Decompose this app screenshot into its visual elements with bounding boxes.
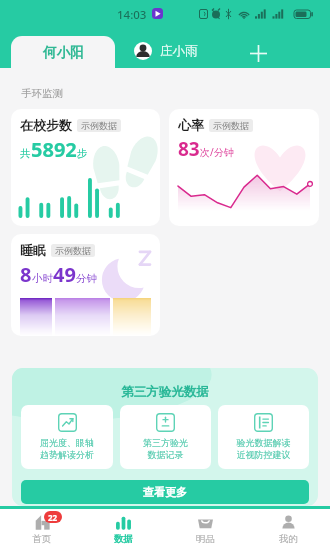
staticText: 22 bbox=[48, 512, 58, 523]
button[interactable]: 心率 bbox=[169, 109, 319, 226]
staticText: 数据 bbox=[114, 533, 133, 545]
staticText: 示例数据 bbox=[81, 120, 117, 131]
staticText: 次/分钟 bbox=[200, 145, 234, 159]
staticText: 83 bbox=[178, 136, 200, 162]
staticText: 8 bbox=[20, 261, 32, 288]
staticText: 分钟 bbox=[76, 272, 97, 285]
staticText: 睡眠 bbox=[20, 242, 46, 258]
button[interactable]: 我的 bbox=[247, 509, 330, 550]
staticText: 共 bbox=[20, 147, 31, 160]
staticText: 5892 bbox=[31, 136, 77, 163]
staticText: 庄小雨 bbox=[160, 43, 198, 59]
staticText: 查看更多 bbox=[143, 485, 187, 499]
button[interactable]: 查看更多 bbox=[21, 480, 309, 504]
button[interactable]: 屈光度、眼轴 趋势解读分析 bbox=[21, 405, 113, 469]
staticText: 首页 bbox=[32, 533, 51, 545]
staticText: 小时 bbox=[32, 272, 53, 285]
staticText: 心率 bbox=[178, 117, 204, 133]
staticText: 明品 bbox=[196, 533, 215, 545]
staticText: 在校步数 bbox=[20, 117, 72, 133]
button[interactable]: 明品 bbox=[164, 509, 247, 550]
staticText: 第三方验光 数据记录 bbox=[120, 437, 211, 461]
staticText: 步 bbox=[77, 147, 88, 160]
button[interactable]: 数据 bbox=[82, 509, 164, 550]
button[interactable]: 验光数据解读 近视防控建议 bbox=[218, 405, 309, 469]
button[interactable]: 睡眠 bbox=[11, 234, 160, 336]
staticText: 14:03 bbox=[117, 7, 147, 23]
staticText: 第三方验光数据 bbox=[21, 384, 309, 400]
button[interactable]: 何小阳 bbox=[11, 36, 115, 68]
button[interactable]: 添加 bbox=[246, 41, 270, 65]
button[interactable]: 第三方验光 数据记录 bbox=[120, 405, 211, 469]
staticText: 手环监测 bbox=[21, 87, 63, 100]
staticText: 验光数据解读 近视防控建议 bbox=[218, 437, 309, 461]
staticText: 示例数据 bbox=[55, 245, 91, 256]
staticText: 何小阳 bbox=[43, 44, 84, 61]
staticText: 示例数据 bbox=[213, 120, 249, 131]
button[interactable]: 在校步数 bbox=[11, 109, 160, 226]
button[interactable]: 22 bbox=[0, 509, 82, 550]
staticText: 49 bbox=[53, 261, 76, 288]
button[interactable]: 庄小雨 bbox=[134, 42, 198, 60]
staticText: 屈光度、眼轴 趋势解读分析 bbox=[21, 437, 113, 461]
staticText: 我的 bbox=[279, 533, 298, 545]
